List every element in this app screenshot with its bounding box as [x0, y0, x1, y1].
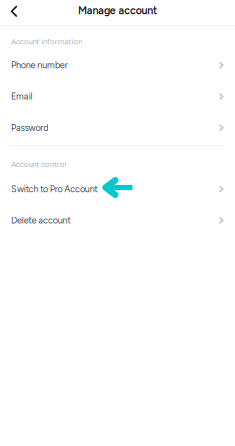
staticText: Email — [11, 91, 32, 102]
button[interactable]: Back — [2, 0, 26, 21]
button[interactable]: Delete account — [0, 205, 235, 236]
staticText: Password — [11, 122, 48, 133]
staticText: Account control — [11, 159, 67, 169]
button[interactable]: Phone number — [0, 49, 235, 81]
button[interactable]: Switch to Pro Account — [0, 173, 235, 205]
staticText: Switch to Pro Account — [11, 184, 98, 194]
staticText: Account information — [11, 37, 82, 46]
staticText: Manage account — [78, 4, 157, 17]
staticText: Phone number — [11, 60, 68, 71]
staticText: Delete account — [11, 215, 70, 226]
button[interactable]: Email — [0, 81, 235, 112]
button[interactable]: Password — [0, 112, 235, 143]
